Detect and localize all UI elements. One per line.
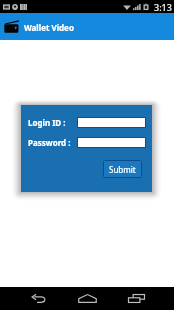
staticText: Wallet Video	[24, 22, 74, 33]
staticText: Login ID :	[28, 117, 66, 128]
button[interactable]	[77, 117, 146, 128]
staticText: Password :	[28, 137, 71, 148]
button[interactable]: Back	[19, 287, 57, 310]
button[interactable]: Home	[68, 287, 106, 310]
staticText: Submit	[109, 164, 136, 175]
button[interactable]: Wallet Video	[0, 13, 80, 40]
button[interactable]	[77, 137, 146, 148]
button[interactable]: Recent apps	[117, 287, 155, 310]
staticText: 3:13	[154, 1, 172, 13]
button[interactable]: Submit	[103, 160, 142, 178]
